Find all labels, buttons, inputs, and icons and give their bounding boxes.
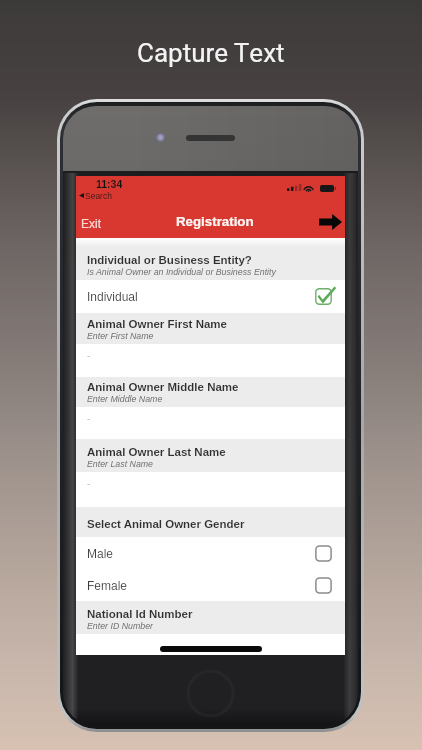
staticText: Is Animal Owner an Individual or Busines…: [87, 267, 276, 277]
staticText: Select Animal Owner Gender: [87, 518, 245, 531]
staticText: -: [87, 350, 91, 361]
staticText: 11:34: [96, 178, 123, 190]
button[interactable]: Individual: [76, 280, 345, 313]
staticText: Male: [87, 547, 114, 560]
staticText: Search: [85, 191, 112, 200]
staticText: Enter Middle Name: [87, 394, 163, 404]
staticText: Enter Last Name: [87, 459, 154, 469]
staticText: -: [87, 478, 91, 489]
staticText: Enter ID Number: [87, 621, 153, 631]
button[interactable]: Next: [315, 209, 346, 235]
staticText: Exit: [81, 217, 102, 230]
button[interactable]: Exit: [76, 206, 110, 234]
staticText: Individual or Business Entity?: [87, 254, 252, 267]
staticText: Individual: [87, 290, 138, 303]
staticText: Registration: [176, 214, 254, 229]
staticText: Animal Owner First Name: [87, 318, 227, 331]
button[interactable]: Male: [76, 537, 345, 569]
staticText: National Id Number: [87, 608, 193, 621]
staticText: Enter First Name: [87, 331, 154, 341]
staticText: Capture Text: [137, 35, 285, 73]
button[interactable]: Female: [76, 569, 345, 601]
staticText: Female: [87, 579, 128, 592]
staticText: Animal Owner Middle Name: [87, 381, 239, 394]
staticText: Animal Owner Last Name: [87, 446, 226, 459]
staticText: -: [87, 413, 91, 424]
